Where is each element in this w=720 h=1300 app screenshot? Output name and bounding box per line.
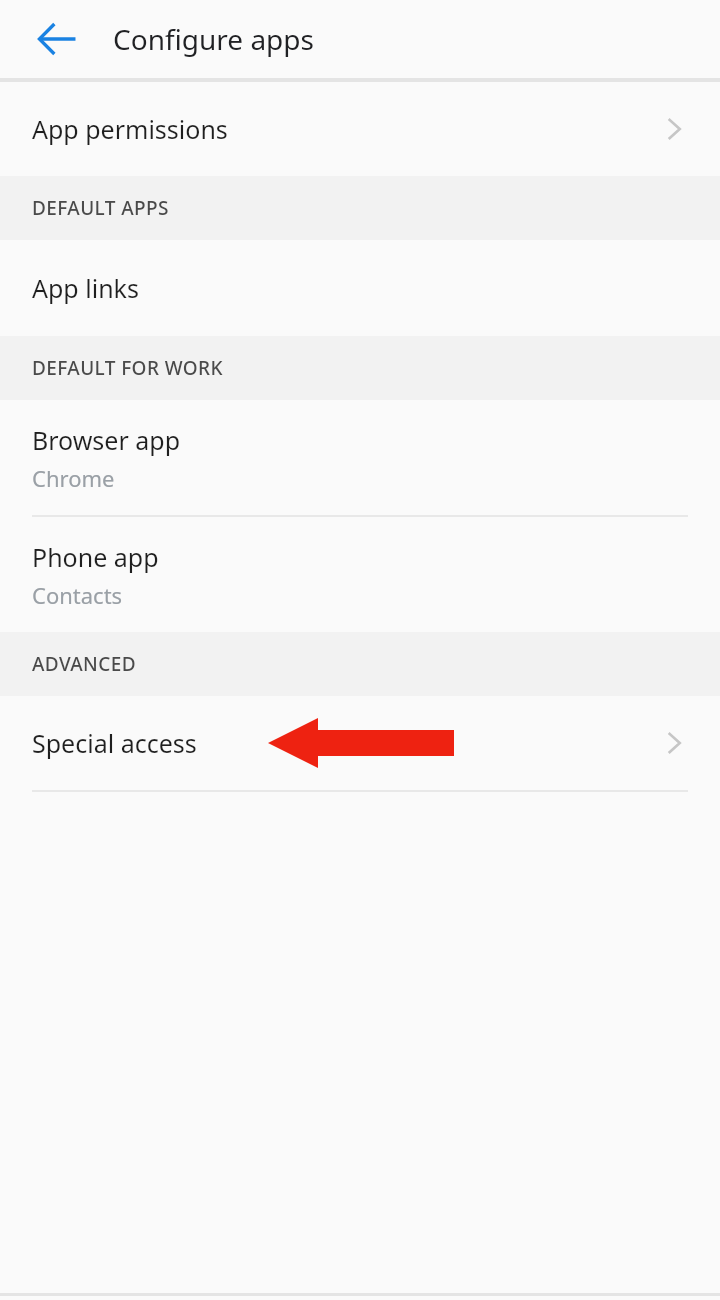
button[interactable]: Special access [0,696,720,790]
button[interactable]: App permissions [0,82,720,176]
staticText: Configure apps [113,20,314,58]
button[interactable]: App links [0,240,720,336]
staticText: Phone app [32,540,159,574]
staticText: App permissions [32,112,228,146]
button[interactable]: Back [20,2,94,76]
staticText: DEFAULT APPS [32,195,169,221]
staticText: DEFAULT FOR WORK [32,355,223,381]
staticText: Chrome [32,463,115,493]
staticText: ADVANCED [32,651,136,677]
staticText: Special access [32,726,660,760]
staticText: Browser app [32,423,181,457]
staticText: App links [32,271,139,305]
button[interactable]: Browser app [0,400,720,515]
staticText: Contacts [32,580,123,610]
button[interactable]: Phone app [0,517,720,632]
